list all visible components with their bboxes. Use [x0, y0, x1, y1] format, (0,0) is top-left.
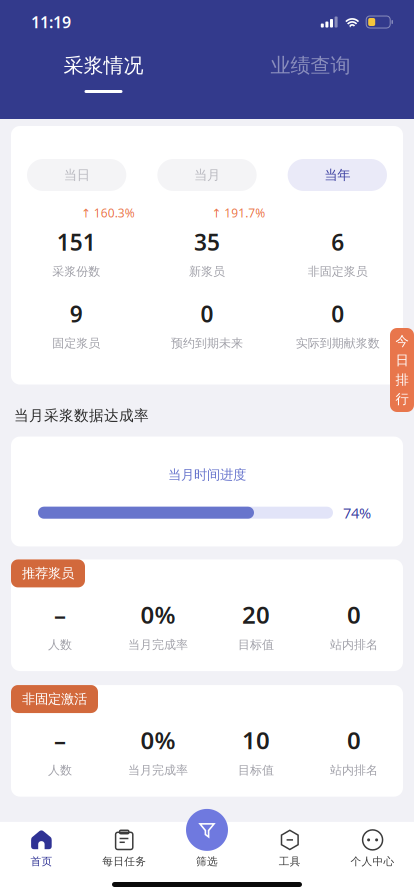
staticText: 站内排名	[330, 637, 378, 652]
staticText: 行	[395, 391, 408, 407]
staticText: 业绩查询	[270, 53, 350, 78]
staticText: 当月采浆数据达成率	[14, 407, 149, 425]
staticText: 非固定激活	[22, 691, 87, 707]
staticText: 新浆员	[189, 264, 225, 279]
staticText: 预约到期未来	[171, 336, 243, 350]
button[interactable]: 今	[390, 328, 414, 412]
button[interactable]: 筛选	[166, 822, 248, 876]
staticText: 首页	[30, 855, 52, 868]
staticText: ↑ 191.7%	[211, 205, 265, 221]
button[interactable]: 个人中心	[331, 822, 414, 876]
button[interactable]: 当日	[27, 159, 126, 191]
staticText: 采浆情况	[63, 53, 143, 78]
staticText: –	[54, 598, 66, 630]
button[interactable]: 工具	[248, 822, 331, 876]
staticText: 当日	[64, 167, 90, 183]
staticText: 当年	[324, 167, 350, 183]
staticText: 固定浆员	[52, 336, 100, 350]
staticText: 推荐浆员	[22, 565, 74, 582]
button[interactable]: 业绩查询	[207, 53, 414, 93]
staticText: 当月时间进度	[168, 467, 246, 483]
staticText: 0	[200, 299, 213, 329]
staticText: 10	[242, 724, 270, 756]
button[interactable]: 当年	[288, 159, 387, 191]
staticText: 当月完成率	[128, 763, 188, 778]
button[interactable]: 筛选	[186, 809, 228, 851]
staticText: 站内排名	[330, 763, 378, 778]
staticText: 0%	[140, 724, 175, 756]
staticText: 日	[395, 352, 408, 368]
staticText: 目标值	[238, 637, 274, 652]
staticText: 9	[70, 299, 83, 329]
staticText: –	[54, 724, 66, 756]
button[interactable]: 当月	[157, 159, 257, 191]
staticText: 11:19	[31, 11, 71, 33]
staticText: ↑ 160.3%	[81, 205, 135, 221]
staticText: 目标值	[238, 763, 274, 778]
staticText: 0	[347, 598, 361, 630]
staticText: 今	[395, 333, 408, 349]
button[interactable]: 每日任务	[83, 822, 166, 876]
staticText: 74%	[343, 503, 371, 522]
staticText: 0	[347, 724, 361, 756]
button[interactable]: 采浆情况	[0, 53, 207, 93]
staticText: 35	[194, 227, 220, 257]
staticText: 个人中心	[351, 855, 395, 868]
staticText: 0%	[140, 598, 175, 630]
staticText: 采浆份数	[52, 264, 100, 279]
staticText: 人数	[48, 763, 72, 778]
staticText: 当月完成率	[128, 637, 188, 652]
staticText: 实际到期献浆数	[296, 336, 380, 350]
staticText: 每日任务	[102, 855, 146, 868]
staticText: 人数	[48, 637, 72, 652]
staticText: 0	[331, 299, 344, 329]
staticText: 6	[331, 227, 344, 257]
staticText: 筛选	[196, 855, 218, 868]
staticText: 排	[395, 371, 408, 388]
staticText: 非固定浆员	[308, 264, 368, 279]
staticText: 当月	[194, 167, 220, 183]
staticText: 工具	[279, 855, 301, 868]
staticText: 151	[57, 227, 96, 257]
button[interactable]: 首页	[0, 822, 83, 876]
staticText: 20	[242, 598, 270, 630]
